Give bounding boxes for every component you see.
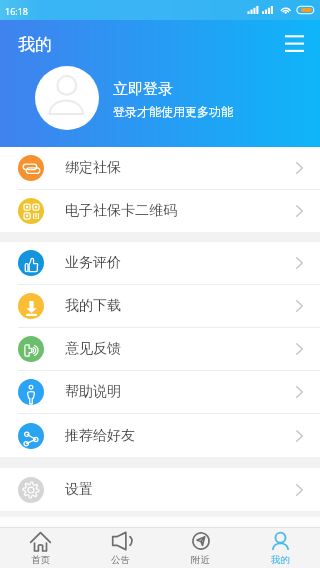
staticText: 立即登录: [113, 80, 173, 99]
staticText: 附近: [191, 554, 210, 566]
button[interactable]: Menu: [276, 25, 312, 61]
button[interactable]: 首页: [0, 528, 80, 568]
staticText: 推荐给好友: [65, 427, 135, 445]
staticText: 意见反馈: [65, 340, 121, 358]
button[interactable]: 公告: [80, 528, 160, 568]
button[interactable]: 帮助说明: [0, 371, 320, 414]
staticText: 我的: [271, 554, 290, 566]
button[interactable]: 绑定社保: [0, 147, 320, 190]
button[interactable]: 设置: [0, 468, 320, 511]
button[interactable]: 推荐给好友: [0, 414, 320, 457]
staticText: 绑定社保: [65, 159, 121, 177]
staticText: 帮助说明: [65, 383, 121, 401]
staticText: 我的: [18, 34, 52, 55]
staticText: 首页: [31, 554, 50, 566]
staticText: 公告: [111, 554, 130, 566]
staticText: 业务评价: [65, 254, 121, 272]
button[interactable]: 意见反馈: [0, 328, 320, 371]
staticText: 16:18: [5, 5, 29, 17]
button[interactable]: 电子社保卡二维码: [0, 190, 320, 232]
button[interactable]: 业务评价: [0, 242, 320, 285]
button[interactable]: 我的下载: [0, 285, 320, 328]
staticText: 登录才能使用更多功能: [113, 104, 233, 119]
staticText: 电子社保卡二维码: [65, 202, 177, 220]
staticText: 设置: [65, 481, 93, 499]
button[interactable]: 附近: [160, 528, 240, 568]
staticText: 我的下载: [65, 297, 121, 315]
button[interactable]: 我的: [240, 528, 320, 568]
